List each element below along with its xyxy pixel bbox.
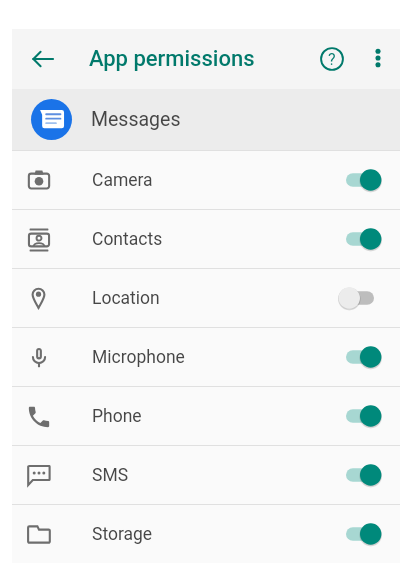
staticText: SMS — [92, 465, 129, 486]
button[interactable]: Back — [19, 35, 67, 83]
staticText: Location — [92, 288, 160, 309]
button[interactable]: SMS — [12, 446, 400, 504]
button[interactable]: Camera permission on — [335, 156, 385, 204]
button[interactable]: Location permission off — [335, 274, 385, 322]
staticText: App permissions — [89, 46, 255, 72]
button[interactable]: Help — [308, 35, 356, 83]
button[interactable]: Phone — [12, 387, 400, 445]
button[interactable]: Contacts — [12, 210, 400, 268]
button[interactable]: Microphone — [12, 328, 400, 386]
button[interactable]: Contacts permission on — [335, 215, 385, 263]
button[interactable]: More options — [355, 35, 400, 80]
button[interactable]: SMS permission on — [335, 451, 385, 499]
staticText: ? — [328, 50, 336, 69]
button[interactable]: Camera — [12, 151, 400, 209]
staticText: Microphone — [92, 347, 185, 368]
button[interactable]: Messages — [12, 89, 400, 150]
button[interactable]: Location — [12, 269, 400, 327]
button[interactable]: Storage — [12, 505, 400, 563]
staticText: Storage — [92, 524, 153, 545]
button[interactable]: Phone permission on — [335, 392, 385, 440]
staticText: Messages — [91, 108, 181, 131]
button[interactable]: Microphone permission on — [335, 333, 385, 381]
button[interactable]: Storage permission on — [335, 510, 385, 558]
staticText: Camera — [92, 170, 153, 191]
staticText: Contacts — [92, 229, 163, 250]
staticText: Phone — [92, 406, 142, 427]
